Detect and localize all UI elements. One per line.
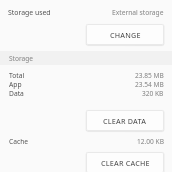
- staticText: Total: [9, 71, 25, 80]
- staticText: 12.00 KB: [137, 137, 164, 146]
- staticText: Storage used: [8, 8, 51, 17]
- button[interactable]: CLEAR CACHE: [86, 152, 164, 172]
- staticText: External storage: [112, 8, 164, 17]
- staticText: Data: [9, 89, 24, 98]
- staticText: CHANGE: [110, 30, 141, 40]
- staticText: 320 KB: [142, 89, 164, 98]
- staticText: Cache: [9, 137, 29, 146]
- button[interactable]: CHANGE: [86, 24, 164, 45]
- staticText: 23.85 MB: [135, 71, 164, 80]
- staticText: CLEAR DATA: [103, 116, 147, 126]
- staticText: Storage: [9, 54, 34, 63]
- staticText: App: [9, 80, 22, 89]
- button[interactable]: CLEAR DATA: [86, 110, 164, 131]
- staticText: CLEAR CACHE: [101, 158, 150, 168]
- staticText: 23.54 MB: [135, 80, 164, 89]
